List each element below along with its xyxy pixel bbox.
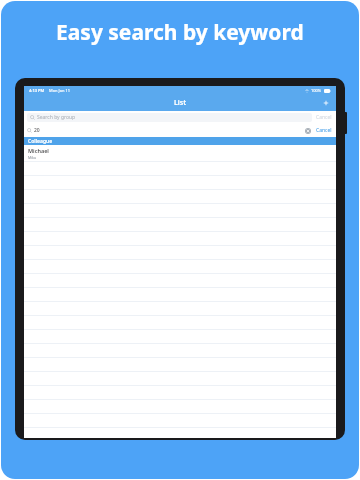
button[interactable]: Cancel bbox=[316, 127, 332, 134]
staticText: Search by group bbox=[37, 114, 76, 121]
button[interactable]: Cancel bbox=[316, 114, 332, 121]
staticText: 100% bbox=[311, 88, 322, 93]
staticText: 20 bbox=[34, 127, 40, 134]
staticText: Easy search by keyword bbox=[56, 18, 304, 47]
button[interactable]: Clear search bbox=[304, 127, 312, 135]
button[interactable]: Search by group bbox=[24, 111, 336, 124]
staticText: Cancel bbox=[316, 127, 332, 134]
staticText: Cancel bbox=[316, 114, 332, 121]
staticText: List bbox=[174, 98, 187, 108]
staticText: 4:13 PM bbox=[29, 88, 45, 93]
staticText: Mon Jan 11 bbox=[49, 88, 70, 93]
staticText: Michael bbox=[28, 147, 49, 154]
button[interactable]: Michael bbox=[24, 145, 336, 161]
button[interactable]: Add bbox=[320, 97, 332, 109]
staticText: Miku bbox=[28, 155, 37, 160]
staticText: Colleague bbox=[28, 138, 53, 145]
button[interactable]: 20 bbox=[24, 124, 336, 137]
